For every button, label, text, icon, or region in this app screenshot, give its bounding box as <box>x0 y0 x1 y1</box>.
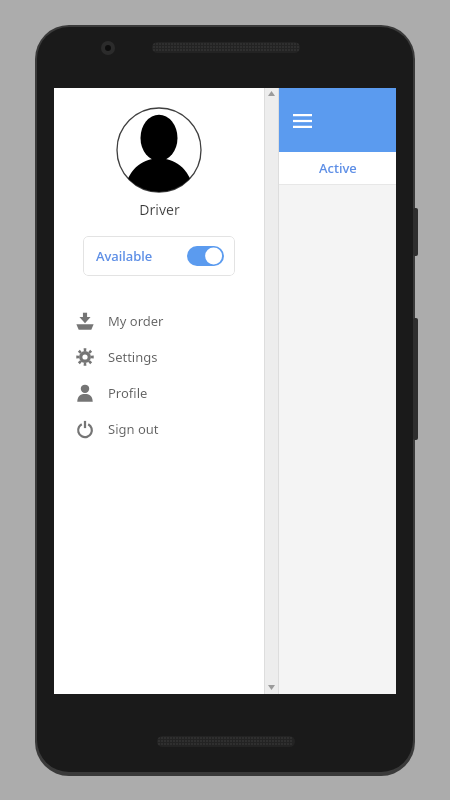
staticText: Available <box>96 247 153 265</box>
button[interactable]: Sign out <box>54 411 264 447</box>
staticText: Active <box>319 159 357 177</box>
staticText: Sign out <box>108 420 159 438</box>
staticText: Driver <box>139 200 180 219</box>
staticText: Settings <box>108 348 158 366</box>
button[interactable]: Profile <box>54 375 264 411</box>
button[interactable]: Open navigation menu <box>284 103 320 139</box>
staticText: Profile <box>108 384 148 402</box>
button[interactable]: Active <box>279 152 396 184</box>
staticText: My order <box>108 312 164 330</box>
button[interactable]: Available <box>83 236 235 276</box>
button[interactable]: My order <box>54 303 264 339</box>
button[interactable]: Settings <box>54 339 264 375</box>
